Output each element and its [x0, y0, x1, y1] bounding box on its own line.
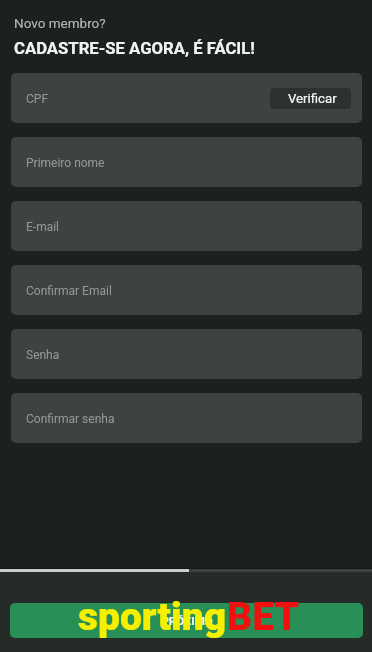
- button[interactable]: E-mail: [11, 201, 362, 251]
- staticText: PRÓXIMO: [161, 614, 213, 627]
- staticText: Novo membro?: [14, 15, 106, 31]
- staticText: sporting: [78, 594, 227, 640]
- staticText: E-mail: [26, 220, 60, 234]
- staticText: Verificar: [288, 91, 337, 106]
- staticText: Primeiro nome: [26, 156, 105, 170]
- button[interactable]: PRÓXIMO: [10, 603, 363, 638]
- staticText: Confirmar senha: [26, 412, 115, 426]
- button[interactable]: Confirmar senha: [11, 393, 362, 443]
- staticText: BET: [227, 594, 299, 640]
- button[interactable]: CPF: [11, 73, 362, 123]
- button[interactable]: Confirmar Email: [11, 265, 362, 315]
- staticText: CADASTRE-SE AGORA, É FÁCIL!: [14, 39, 255, 59]
- staticText: Confirmar Email: [26, 284, 112, 298]
- button[interactable]: Senha: [11, 329, 362, 379]
- staticText: CPF: [26, 92, 49, 106]
- staticText: Senha: [26, 348, 60, 362]
- button[interactable]: Verificar: [270, 88, 351, 109]
- button[interactable]: Primeiro nome: [11, 137, 362, 187]
